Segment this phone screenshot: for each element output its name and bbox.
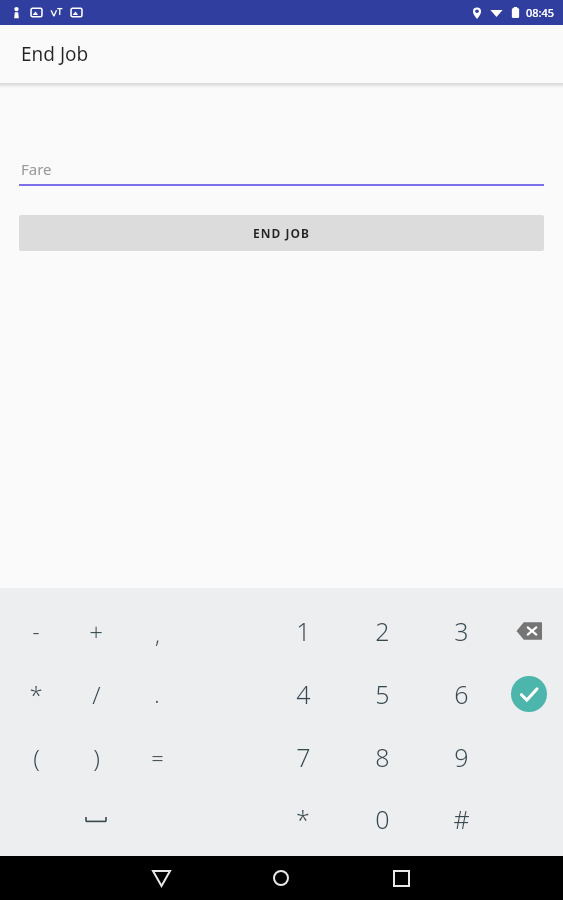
staticText: ( [33, 741, 40, 774]
button[interactable]: # [429, 795, 493, 843]
staticText: * [296, 802, 310, 836]
staticText: 3 [454, 614, 469, 648]
button[interactable]: Home [257, 856, 305, 900]
staticText: 08:45 [526, 5, 555, 20]
staticText: 4 [296, 677, 311, 711]
button[interactable]: 1 [271, 607, 335, 655]
staticText: * [29, 678, 43, 711]
staticText: 5 [375, 677, 390, 711]
button[interactable]: - [6, 609, 66, 653]
staticText: 1 [296, 614, 311, 648]
staticText: + [89, 615, 103, 648]
button[interactable]: + [66, 609, 126, 653]
button[interactable]: * [6, 672, 66, 716]
staticText: / [92, 678, 101, 711]
staticText: , [155, 619, 160, 649]
button[interactable]: 0 [350, 795, 414, 843]
button[interactable]: 5 [350, 670, 414, 718]
button[interactable]: END JOB [19, 215, 544, 251]
button[interactable]: 4 [271, 670, 335, 718]
button[interactable]: Fare [19, 152, 544, 186]
button[interactable]: = [127, 735, 187, 779]
staticText: ) [93, 741, 100, 774]
staticText: 6 [454, 677, 469, 711]
staticText: 2 [375, 614, 390, 648]
button[interactable]: 7 [271, 733, 335, 781]
button[interactable]: . [127, 672, 187, 716]
staticText: = [151, 742, 164, 772]
staticText: END JOB [253, 225, 310, 241]
button[interactable]: , [127, 612, 187, 656]
button[interactable]: 6 [429, 670, 493, 718]
button[interactable]: Back [137, 856, 185, 900]
button[interactable]: / [66, 672, 126, 716]
staticText: - [32, 616, 40, 646]
staticText: # [453, 802, 470, 836]
button[interactable]: Backspace [499, 611, 559, 651]
staticText: . [154, 679, 160, 709]
staticText: End Job [21, 41, 89, 67]
button[interactable]: * [271, 795, 335, 843]
button[interactable]: ) [66, 735, 126, 779]
button[interactable]: 2 [350, 607, 414, 655]
staticText: 7 [296, 740, 311, 774]
staticText: 0 [375, 802, 390, 836]
staticText: 9 [454, 740, 469, 774]
button[interactable]: ( [6, 735, 66, 779]
staticText: Fare [21, 159, 52, 179]
button[interactable]: Space [66, 803, 126, 835]
button[interactable]: Enter [505, 670, 553, 718]
staticText: 8 [375, 740, 390, 774]
button[interactable]: Recents [377, 856, 425, 900]
button[interactable]: 9 [429, 733, 493, 781]
button[interactable]: 8 [350, 733, 414, 781]
button[interactable]: 3 [429, 607, 493, 655]
